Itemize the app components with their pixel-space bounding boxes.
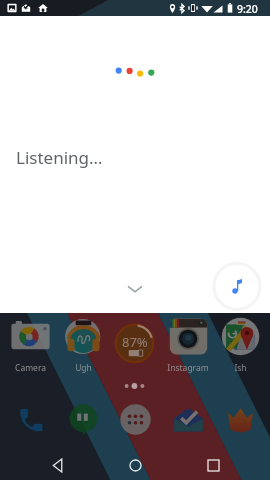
staticText: Instagram — [167, 362, 209, 374]
button[interactable]: Phone — [8, 397, 52, 441]
staticText: Ish — [234, 362, 247, 374]
button[interactable]: All apps — [113, 397, 157, 441]
staticText: 87% — [122, 333, 148, 351]
staticText: Camera — [15, 362, 46, 374]
button[interactable]: Hangouts — [61, 397, 105, 441]
button[interactable]: Recents — [193, 450, 233, 480]
staticText: Listening… — [16, 146, 103, 169]
button[interactable]: Ugh — [58, 317, 108, 377]
staticText: 9:20 — [237, 2, 258, 16]
button[interactable]: Collapse — [118, 272, 152, 306]
staticText: Ugh — [75, 362, 92, 374]
button[interactable]: Music search — [209, 258, 265, 314]
button[interactable]: Battery 87 percent — [114, 323, 155, 364]
button[interactable]: Instagram — [163, 317, 213, 377]
button[interactable]: Back — [38, 450, 78, 480]
button[interactable]: Inbox — [166, 397, 210, 441]
button[interactable]: Nova — [218, 397, 262, 441]
button[interactable]: Camera — [5, 317, 55, 377]
button[interactable]: Ish — [215, 317, 265, 377]
button[interactable]: Home — [115, 450, 155, 480]
